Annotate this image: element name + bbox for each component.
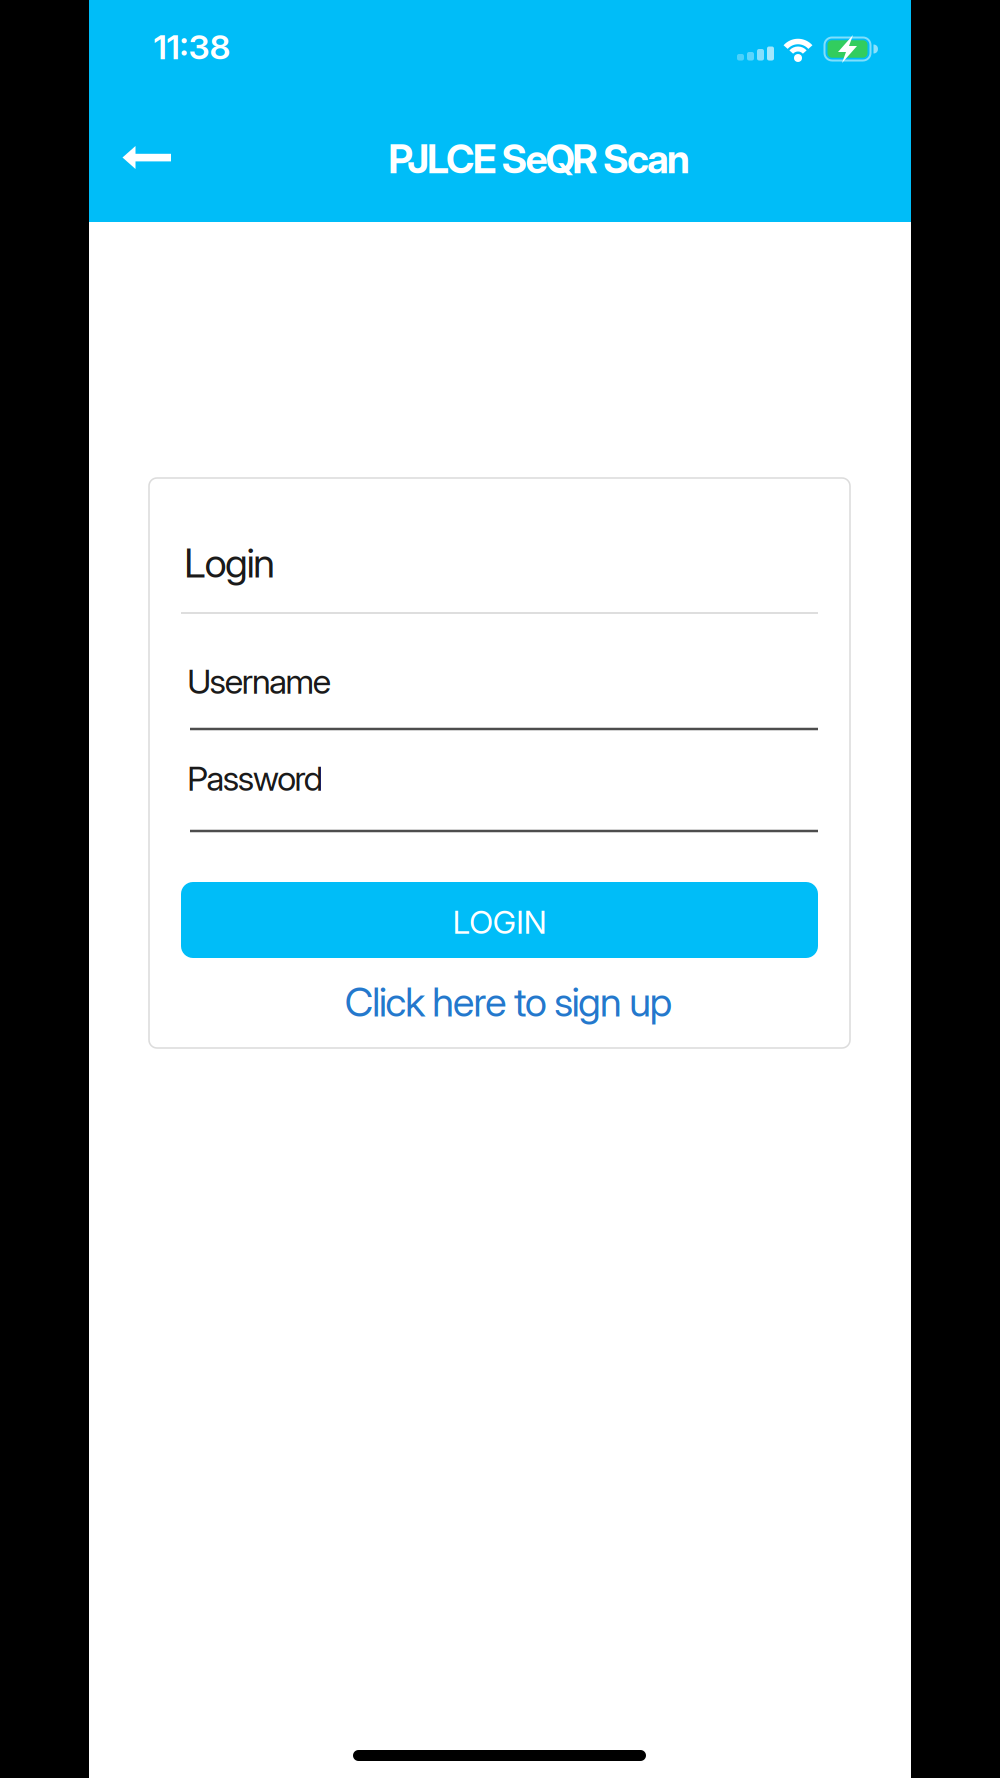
staticText: Login xyxy=(184,539,275,587)
staticText: LOGIN xyxy=(452,903,546,941)
staticText: Click here to sign up xyxy=(344,978,672,1026)
button[interactable]: Click here to sign up xyxy=(344,978,672,1026)
button[interactable]: LOGIN xyxy=(181,882,818,958)
staticText: 11:38 xyxy=(153,26,230,67)
button[interactable]: Back xyxy=(107,128,187,188)
staticText: Username xyxy=(187,661,331,702)
staticText: Password xyxy=(187,758,323,799)
staticText: PJLCE SeQR Scan xyxy=(388,135,690,183)
